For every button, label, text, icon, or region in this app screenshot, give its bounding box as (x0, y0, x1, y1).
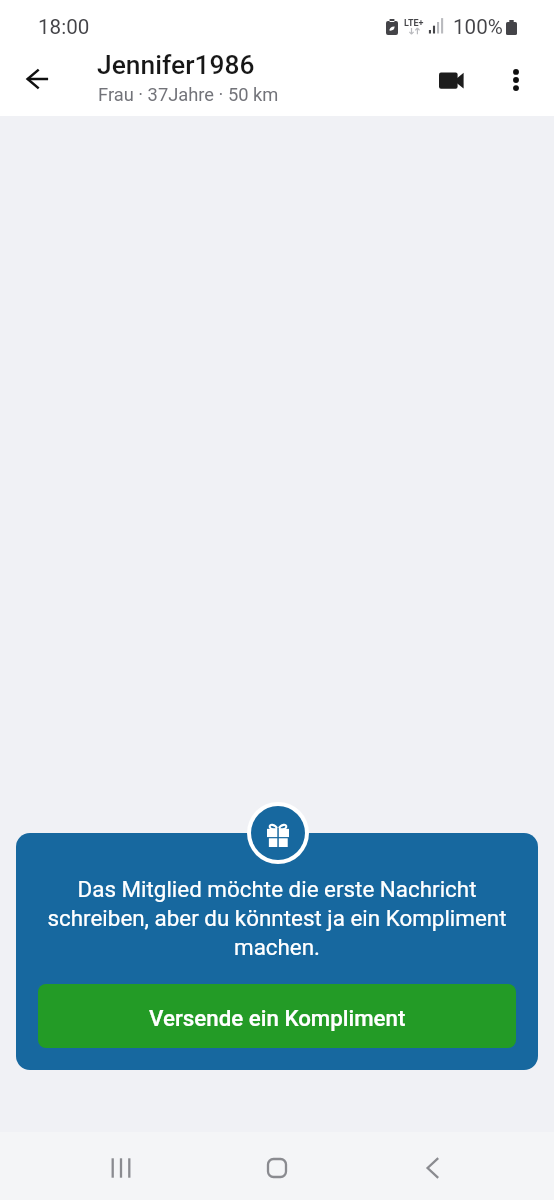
staticText: 18:00 (38, 15, 90, 39)
staticText: Versende ein Kompliment (149, 1005, 406, 1031)
staticText: 100% (453, 15, 503, 39)
button[interactable]: Jennifer1986 (90, 48, 420, 108)
staticText: LTE+ (404, 18, 424, 29)
button[interactable]: Video call (428, 56, 476, 104)
staticText: Frau · 37Jahre · 50 km (98, 84, 279, 105)
button[interactable]: Back (355, 1132, 511, 1200)
button[interactable]: Gift (247, 802, 309, 864)
button[interactable]: More options (492, 56, 540, 104)
staticText: Das Mitglied möchte die erste Nachricht … (38, 876, 516, 960)
button[interactable]: Recent apps (43, 1132, 199, 1200)
staticText: Jennifer1986 (97, 50, 255, 81)
button[interactable]: Back (14, 55, 62, 103)
button[interactable]: Versende ein Kompliment (38, 984, 516, 1048)
button[interactable]: Home (199, 1132, 355, 1200)
